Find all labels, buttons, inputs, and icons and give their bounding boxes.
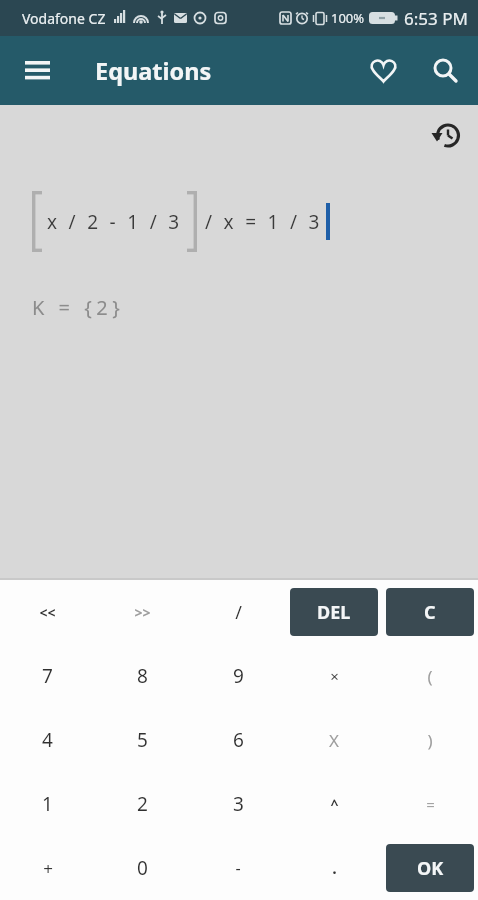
- button[interactable]: 1: [4, 780, 91, 828]
- button[interactable]: [360, 36, 406, 105]
- button[interactable]: OK: [386, 844, 474, 892]
- staticText: OK: [417, 856, 444, 881]
- staticText: 100%: [331, 9, 365, 27]
- button[interactable]: ): [386, 716, 474, 764]
- button[interactable]: 3: [194, 780, 282, 828]
- staticText: 3: [233, 791, 244, 817]
- button[interactable]: -: [194, 844, 282, 892]
- staticText: K = {2}: [32, 294, 125, 321]
- button[interactable]: [428, 117, 464, 153]
- button[interactable]: 4: [4, 716, 91, 764]
- staticText: 1: [42, 791, 53, 817]
- staticText: Vodafone CZ: [22, 9, 106, 28]
- button[interactable]: 6: [194, 716, 282, 764]
- button[interactable]: 5: [99, 716, 186, 764]
- staticText: ^: [330, 795, 339, 814]
- button[interactable]: <<: [4, 588, 91, 636]
- staticText: 8: [137, 663, 148, 689]
- staticText: 0: [137, 855, 148, 881]
- staticText: x / 2 - 1 / 3: [47, 209, 183, 235]
- staticText: 7: [42, 663, 53, 689]
- staticText: / x = 1 / 3: [205, 209, 323, 235]
- button[interactable]: 7: [4, 652, 91, 700]
- button[interactable]: +: [4, 844, 91, 892]
- button[interactable]: DEL: [290, 588, 378, 636]
- button[interactable]: .: [290, 844, 378, 892]
- button[interactable]: /: [194, 588, 282, 636]
- staticText: X: [329, 729, 339, 752]
- staticText: ×: [330, 666, 339, 686]
- button[interactable]: ×: [290, 652, 378, 700]
- staticText: 6:53 PM: [404, 7, 468, 30]
- button[interactable]: [422, 36, 470, 105]
- staticText: 6: [233, 727, 244, 753]
- button[interactable]: >>: [99, 588, 186, 636]
- button[interactable]: 8: [99, 652, 186, 700]
- staticText: =: [426, 794, 435, 814]
- button[interactable]: =: [386, 780, 474, 828]
- button[interactable]: 0: [99, 844, 186, 892]
- button[interactable]: 9: [194, 652, 282, 700]
- staticText: +: [43, 857, 53, 880]
- button[interactable]: 2: [99, 780, 186, 828]
- staticText: 9: [233, 663, 244, 689]
- staticText: Equations: [95, 55, 212, 87]
- staticText: DEL: [317, 600, 351, 625]
- button[interactable]: ^: [290, 780, 378, 828]
- staticText: 4: [42, 727, 53, 753]
- staticText: /: [235, 600, 242, 625]
- button[interactable]: C: [386, 588, 474, 636]
- staticText: .: [332, 857, 337, 879]
- button[interactable]: X: [290, 716, 378, 764]
- staticText: >>: [134, 603, 151, 622]
- staticText: C: [424, 600, 436, 625]
- staticText: (: [427, 665, 433, 688]
- staticText: 2: [137, 791, 148, 817]
- staticText: ): [427, 729, 433, 752]
- staticText: 5: [137, 727, 148, 753]
- staticText: -: [235, 857, 241, 879]
- staticText: <<: [39, 603, 56, 622]
- button[interactable]: [0, 36, 75, 105]
- button[interactable]: (: [386, 652, 474, 700]
